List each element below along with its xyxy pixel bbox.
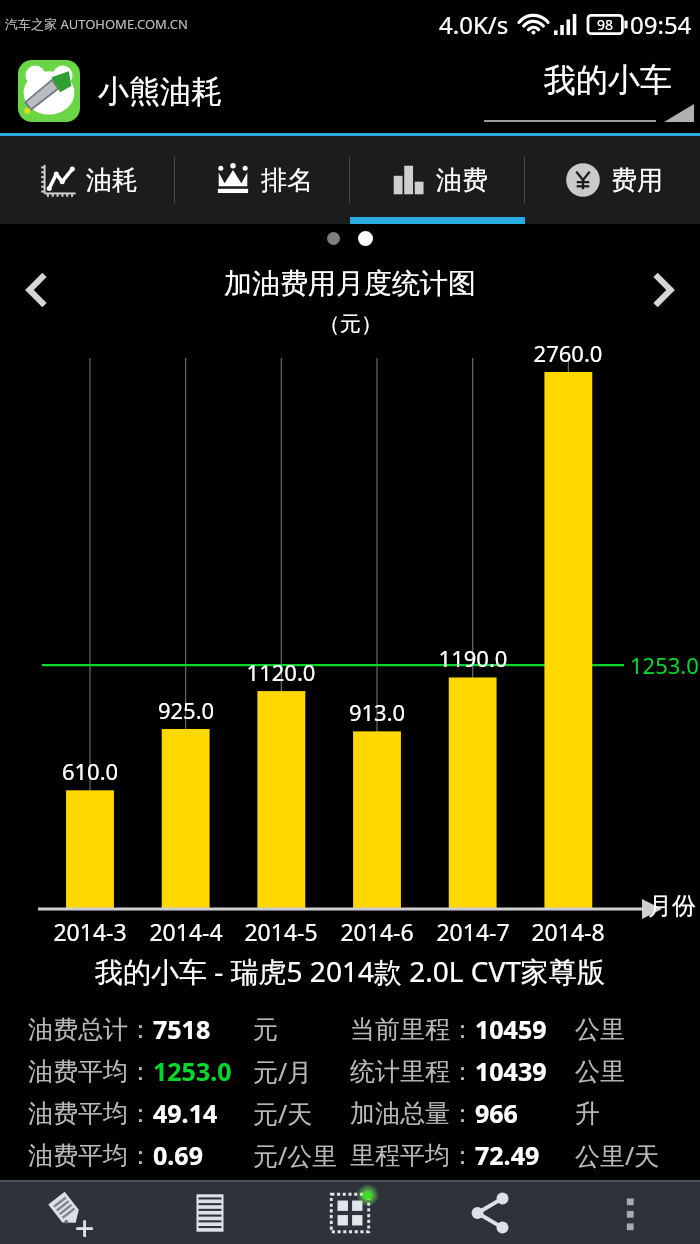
staticText: 10439 [475, 1054, 547, 1088]
button[interactable]: Next chart [630, 258, 694, 322]
button[interactable]: Previous chart [6, 258, 70, 322]
button[interactable]: 油耗 [0, 136, 175, 224]
staticText: 2014-8 [516, 916, 620, 947]
staticText: 7518 [153, 1012, 211, 1046]
staticText: 2014-4 [134, 916, 238, 947]
staticText: 元/公里 [253, 1138, 338, 1172]
button[interactable]: 费用 [525, 136, 700, 224]
staticText: 排名 [261, 164, 313, 197]
staticText: 元/天 [253, 1096, 313, 1130]
staticText: 0.69 [153, 1138, 203, 1172]
button[interactable]: 小熊油耗 [18, 60, 222, 122]
staticText: 公里 [575, 1056, 625, 1087]
staticText: 汽车之家 AUTOHOME.COM.CN [5, 15, 188, 33]
staticText: （元） [319, 311, 382, 337]
staticText: 2760.0 [518, 338, 618, 368]
button[interactable]: More [560, 1182, 700, 1244]
staticText: 油费总计： [28, 1014, 153, 1045]
staticText: 4.0K/s [439, 8, 509, 41]
staticText: 913.0 [327, 697, 427, 727]
staticText: 49.14 [153, 1096, 218, 1130]
button[interactable]: 我的小车 [484, 60, 694, 122]
staticText: 2014-3 [38, 916, 142, 947]
staticText: 油费平均： [28, 1140, 153, 1171]
staticText: 10459 [475, 1012, 547, 1046]
staticText: 里程平均： [350, 1140, 475, 1171]
staticText: 98 [597, 15, 614, 34]
staticText: 小熊油耗 [98, 72, 222, 111]
staticText: 925.0 [136, 695, 236, 725]
staticText: 加油总量： [350, 1098, 475, 1129]
staticText: 油费 [436, 164, 488, 197]
staticText: 我的小车 [544, 60, 672, 100]
staticText: 统计里程： [350, 1056, 475, 1087]
button[interactable]: Share [420, 1182, 560, 1244]
staticText: 966 [475, 1096, 518, 1130]
button[interactable]: 油费 [350, 136, 525, 224]
staticText: 2014-5 [229, 916, 333, 947]
staticText: 公里/天 [575, 1138, 660, 1172]
staticText: 2014-7 [421, 916, 525, 947]
staticText: 1253.00 [630, 650, 700, 680]
staticText: 元/月 [253, 1054, 313, 1088]
staticText: 72.49 [475, 1138, 540, 1172]
staticText: 油费平均： [28, 1056, 153, 1087]
staticText: 油耗 [86, 164, 138, 197]
staticText: 油费平均： [28, 1098, 153, 1129]
button[interactable]: Add record [0, 1182, 140, 1244]
staticText: 我的小车 - 瑞虎5 2014款 2.0L CVT家尊版 [95, 952, 605, 990]
staticText: 升 [575, 1098, 600, 1129]
staticText: 加油费用月度统计图 [224, 266, 476, 301]
staticText: 2014-6 [325, 916, 429, 947]
staticText: 元 [253, 1014, 278, 1045]
button[interactable]: List [140, 1182, 280, 1244]
staticText: 1253.0 [153, 1054, 232, 1088]
button[interactable]: 排名 [175, 136, 350, 224]
staticText: 公里 [575, 1014, 625, 1045]
staticText: 1120.0 [231, 657, 331, 687]
staticText: 1190.0 [423, 643, 523, 673]
staticText: 月份 [648, 891, 696, 921]
button[interactable]: Statistics [280, 1182, 420, 1244]
staticText: 610.0 [40, 756, 140, 786]
staticText: 费用 [611, 164, 663, 197]
staticText: 09:54 [630, 8, 692, 41]
staticText: 当前里程： [350, 1014, 475, 1045]
